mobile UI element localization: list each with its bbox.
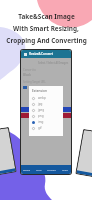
staticText: Black <box>23 73 31 77</box>
staticText: img <box>38 120 44 124</box>
button[interactable]: More <box>58 165 71 174</box>
staticText: Select / Select All Images <box>38 61 69 65</box>
staticText: Extension <box>32 89 47 93</box>
staticText: More <box>62 168 68 171</box>
staticText: webp <box>38 96 46 100</box>
staticText: jpg <box>38 102 43 106</box>
button[interactable]: jpeg <box>32 107 61 113</box>
staticText: Resize <box>23 168 31 171</box>
staticText: Resize&Convert <box>29 52 54 56</box>
button[interactable]: jpg <box>32 101 61 107</box>
staticText: Crop <box>36 168 42 171</box>
button[interactable]: png <box>32 113 61 119</box>
staticText: Convert to <box>23 68 36 72</box>
button[interactable]: Convert <box>45 165 58 174</box>
staticText: gif <box>38 126 42 130</box>
staticText: With Smart Resizing, <box>13 24 79 33</box>
staticText: Take&Scan Image <box>18 12 75 21</box>
button[interactable]: Crop <box>33 165 45 174</box>
button[interactable]: webp <box>32 95 61 101</box>
staticText: png <box>38 114 44 118</box>
staticText: Convert <box>47 168 56 171</box>
staticText: Cropping And Converting <box>6 36 87 45</box>
button[interactable]: img <box>32 119 61 125</box>
button[interactable]: Resize <box>21 165 33 174</box>
staticText: jpeg <box>38 108 45 112</box>
staticText: Setting Target URL <box>23 80 46 84</box>
button[interactable]: gif <box>32 125 61 131</box>
